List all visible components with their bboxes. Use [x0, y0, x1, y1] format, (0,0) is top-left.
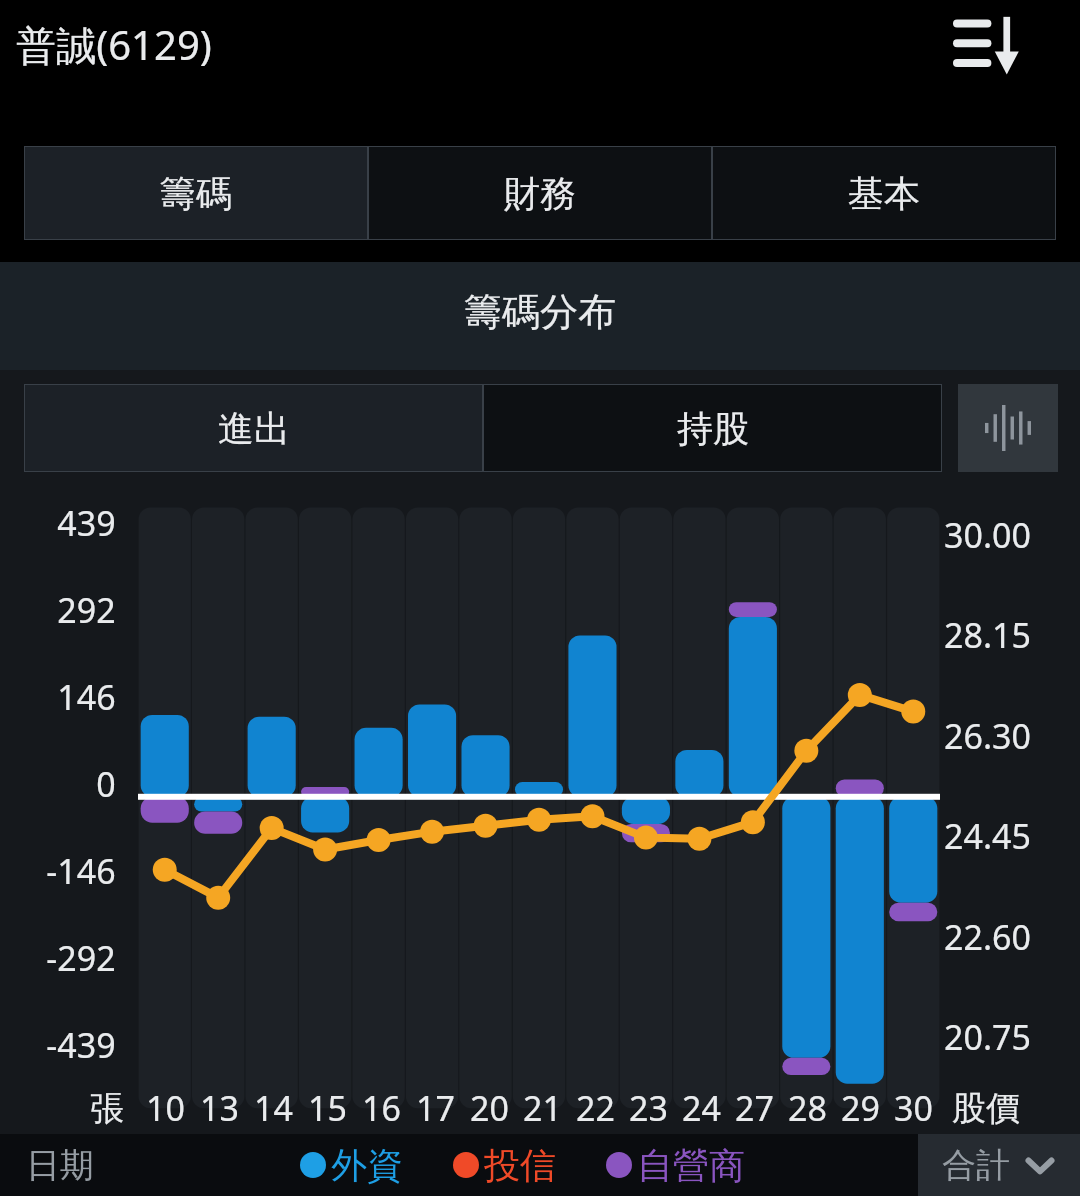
button[interactable]: 日期	[0, 1134, 300, 1196]
button[interactable]: 籌碼分布	[22, 262, 1058, 370]
button[interactable]: 基本	[712, 146, 1056, 240]
button[interactable]: 投信	[453, 1134, 556, 1196]
button[interactable]: 財務	[368, 146, 712, 240]
staticText: 146	[57, 674, 116, 720]
staticText: 24.45	[944, 813, 1031, 859]
staticText: 自營商	[637, 1143, 745, 1188]
staticText: 進出	[218, 406, 290, 451]
staticText: 16	[362, 1085, 401, 1131]
staticText: -292	[46, 935, 116, 981]
staticText: 21	[523, 1085, 562, 1131]
staticText: 24	[682, 1085, 721, 1131]
staticText: 股價	[952, 1087, 1020, 1130]
staticText: 籌碼分布	[464, 288, 616, 336]
staticText: 26.30	[944, 713, 1031, 759]
button[interactable]: 持股	[483, 384, 942, 472]
staticText: 17	[416, 1085, 455, 1131]
staticText: 29	[841, 1085, 880, 1131]
staticText: 外資	[331, 1143, 403, 1188]
staticText: 20	[470, 1085, 509, 1131]
button[interactable]: Sort	[940, 0, 1030, 90]
staticText: 28.15	[944, 612, 1031, 658]
staticText: 14	[254, 1085, 293, 1131]
button[interactable]: 合計	[942, 1134, 1056, 1196]
staticText: 合計	[942, 1144, 1010, 1187]
button[interactable]: Chart type	[958, 384, 1058, 472]
staticText: 財務	[504, 171, 576, 216]
button[interactable]: 自營商	[606, 1134, 745, 1196]
staticText: 10	[146, 1085, 185, 1131]
staticText: 23	[629, 1085, 668, 1131]
staticText: 張	[90, 1087, 124, 1130]
staticText: 30.00	[944, 512, 1031, 558]
staticText: 普誠(6129)	[16, 17, 212, 72]
staticText: 基本	[848, 171, 920, 216]
staticText: 22	[576, 1085, 615, 1131]
staticText: 13	[200, 1085, 239, 1131]
staticText: 持股	[677, 406, 749, 451]
staticText: -146	[46, 848, 116, 894]
button[interactable]: 籌碼	[24, 146, 368, 240]
staticText: 22.60	[944, 914, 1031, 960]
staticText: 20.75	[944, 1014, 1031, 1060]
staticText: 28	[788, 1085, 827, 1131]
staticText: 292	[57, 587, 116, 633]
button[interactable]: 外資	[300, 1134, 403, 1196]
staticText: 439	[57, 500, 116, 546]
staticText: 投信	[484, 1143, 556, 1188]
staticText: -439	[46, 1022, 116, 1068]
staticText: 0	[96, 761, 116, 807]
staticText: 27	[735, 1085, 774, 1131]
staticText: 30	[894, 1085, 933, 1131]
button[interactable]: 進出	[24, 384, 483, 472]
staticText: 日期	[26, 1144, 94, 1187]
staticText: 籌碼	[160, 171, 232, 216]
staticText: 15	[308, 1085, 347, 1131]
